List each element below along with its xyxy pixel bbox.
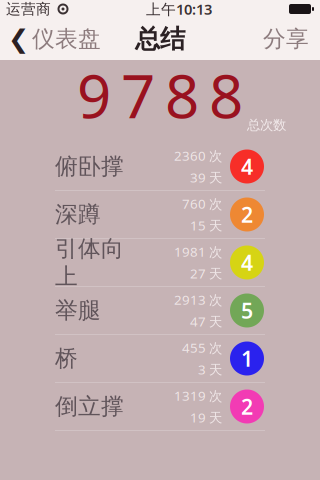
staticText: 上午10:13 [146, 0, 212, 19]
staticText: 47 天 [190, 312, 222, 330]
staticText: 4 [241, 152, 253, 181]
staticText: 1 [241, 344, 253, 373]
staticText: 8 [165, 55, 199, 135]
staticText: 1319 次 [174, 387, 222, 404]
staticText: 2913 次 [174, 291, 222, 308]
staticText: 分享 [263, 25, 309, 53]
staticText: 1981 次 [174, 243, 222, 260]
staticText: 760 次 [182, 195, 222, 212]
staticText: 运营商 [6, 0, 51, 18]
button[interactable]: 分享 [252, 18, 320, 60]
staticText: 俯卧撑 [55, 153, 124, 180]
staticText: 8 [209, 55, 243, 135]
staticText: 总结 [135, 23, 185, 54]
staticText: 19 天 [190, 408, 222, 426]
button[interactable]: 举腿 [0, 287, 320, 334]
button[interactable]: 引体向上 [0, 239, 320, 286]
staticText: 倒立撑 [55, 393, 124, 420]
button[interactable]: 深蹲 [0, 191, 320, 238]
staticText: 455 次 [182, 339, 222, 356]
staticText: 2 [241, 200, 253, 229]
staticText: 仪表盘 [32, 25, 101, 53]
staticText: 39 天 [190, 168, 222, 186]
staticText: 深蹲 [55, 201, 101, 228]
button[interactable]: 倒立撑 [0, 383, 320, 430]
staticText: 2 [241, 392, 253, 421]
staticText: 5 [241, 296, 253, 325]
staticText: 3 天 [198, 360, 222, 378]
button[interactable]: ❮ [0, 18, 109, 60]
staticText: 9 [77, 55, 111, 135]
staticText: 引体向上 [55, 235, 124, 290]
staticText: 总次数 [247, 117, 286, 133]
staticText: 举腿 [55, 297, 101, 324]
staticText: ❮ [8, 25, 29, 53]
staticText: 桥 [55, 345, 78, 372]
staticText: 15 天 [190, 216, 222, 234]
staticText: 27 天 [190, 264, 222, 282]
staticText: 4 [241, 248, 253, 277]
staticText: 2360 次 [174, 147, 222, 164]
button[interactable]: 桥 [0, 335, 320, 382]
button[interactable]: 俯卧撑 [0, 143, 320, 190]
staticText: 7 [121, 55, 155, 135]
